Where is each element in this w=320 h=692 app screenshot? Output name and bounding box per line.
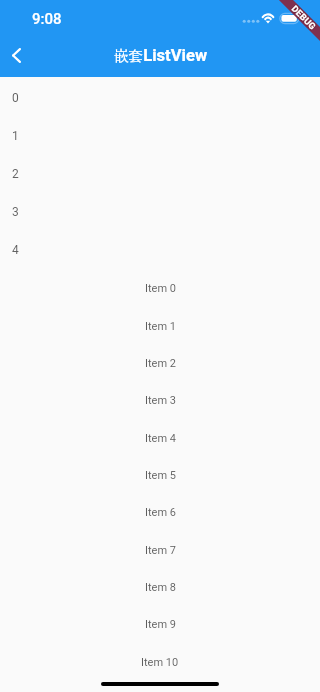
staticText: 嵌套ListView — [114, 46, 208, 65]
staticText: 2 — [12, 167, 19, 181]
staticText: Item 7 — [145, 544, 176, 557]
button[interactable]: Item 8 — [0, 569, 320, 606]
button[interactable]: Item 9 — [0, 606, 320, 643]
button[interactable]: 1 — [0, 117, 320, 155]
staticText: Item 0 — [145, 282, 176, 295]
staticText: Item 2 — [145, 357, 176, 370]
staticText: 4 — [12, 243, 19, 257]
staticText: 9:08 — [32, 10, 62, 28]
button[interactable]: Item 4 — [0, 420, 320, 457]
staticText: Item 4 — [145, 432, 176, 445]
staticText: Item 8 — [145, 581, 176, 594]
staticText: Item 5 — [145, 469, 176, 482]
staticText: Item 6 — [145, 506, 176, 519]
button[interactable]: Item 5 — [0, 457, 320, 494]
staticText: Item 10 — [141, 656, 179, 669]
button[interactable]: Item 1 — [0, 308, 320, 345]
button[interactable]: Item 10 — [0, 644, 320, 681]
staticText: Item 9 — [145, 618, 176, 631]
staticText: DEBUG — [290, 4, 318, 32]
button[interactable]: Item 6 — [0, 494, 320, 531]
button[interactable]: Item 7 — [0, 532, 320, 569]
button[interactable]: 0 — [0, 79, 320, 117]
button[interactable]: Item 0 — [0, 270, 320, 307]
staticText: Item 1 — [145, 320, 176, 333]
staticText: Item 3 — [145, 394, 176, 407]
button[interactable]: 2 — [0, 155, 320, 193]
button[interactable]: Back — [0, 34, 33, 77]
staticText: 0 — [12, 91, 19, 105]
button[interactable]: Item 2 — [0, 345, 320, 382]
button[interactable]: Item 3 — [0, 382, 320, 419]
staticText: 3 — [12, 205, 19, 219]
button[interactable]: 3 — [0, 193, 320, 231]
button[interactable]: 4 — [0, 231, 320, 269]
staticText: 1 — [12, 129, 19, 143]
